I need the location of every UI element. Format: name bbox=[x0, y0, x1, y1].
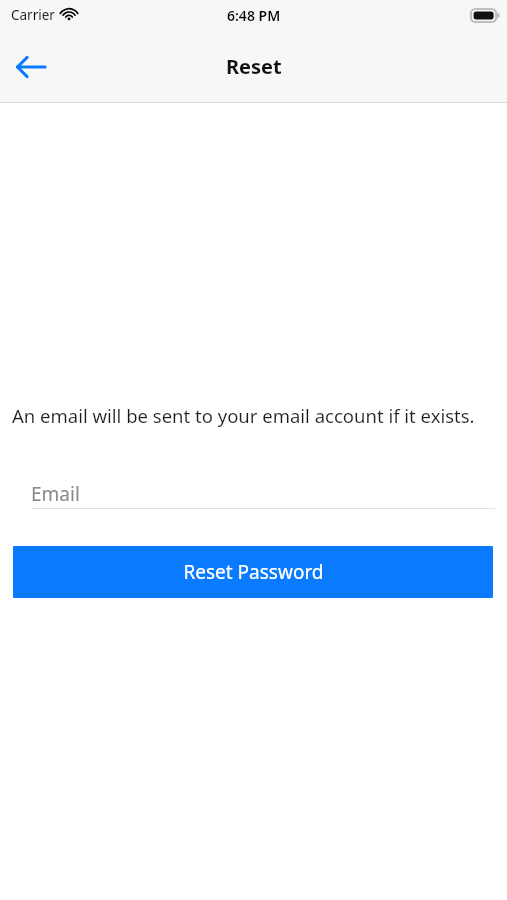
staticText: 6:48 PM bbox=[227, 6, 281, 25]
staticText: Reset bbox=[226, 53, 282, 80]
other: Wi-Fi signal bbox=[60, 8, 78, 22]
button[interactable]: Email bbox=[31, 478, 495, 509]
button[interactable]: Back bbox=[6, 42, 56, 92]
staticText: An email will be sent to your email acco… bbox=[12, 403, 475, 428]
other: Battery full bbox=[471, 9, 499, 22]
staticText: Reset Password bbox=[183, 559, 324, 585]
staticText: Email bbox=[31, 481, 80, 507]
button[interactable]: Reset Password bbox=[13, 546, 493, 598]
staticText: Carrier bbox=[11, 6, 55, 24]
